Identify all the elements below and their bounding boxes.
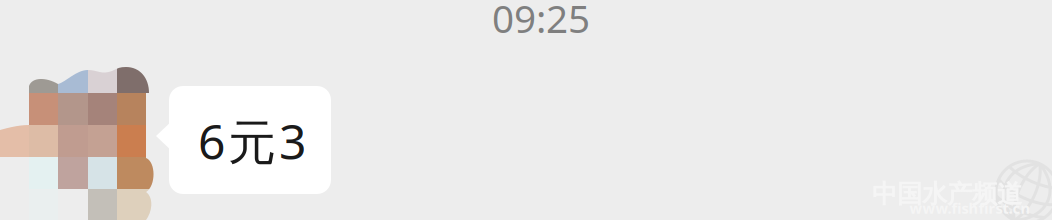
staticText: 中国水产频道	[872, 178, 1022, 209]
staticText: 6元3	[198, 109, 306, 173]
staticText: www.fishfirst.cn	[909, 198, 1030, 218]
staticText: 09:25	[492, 0, 590, 44]
